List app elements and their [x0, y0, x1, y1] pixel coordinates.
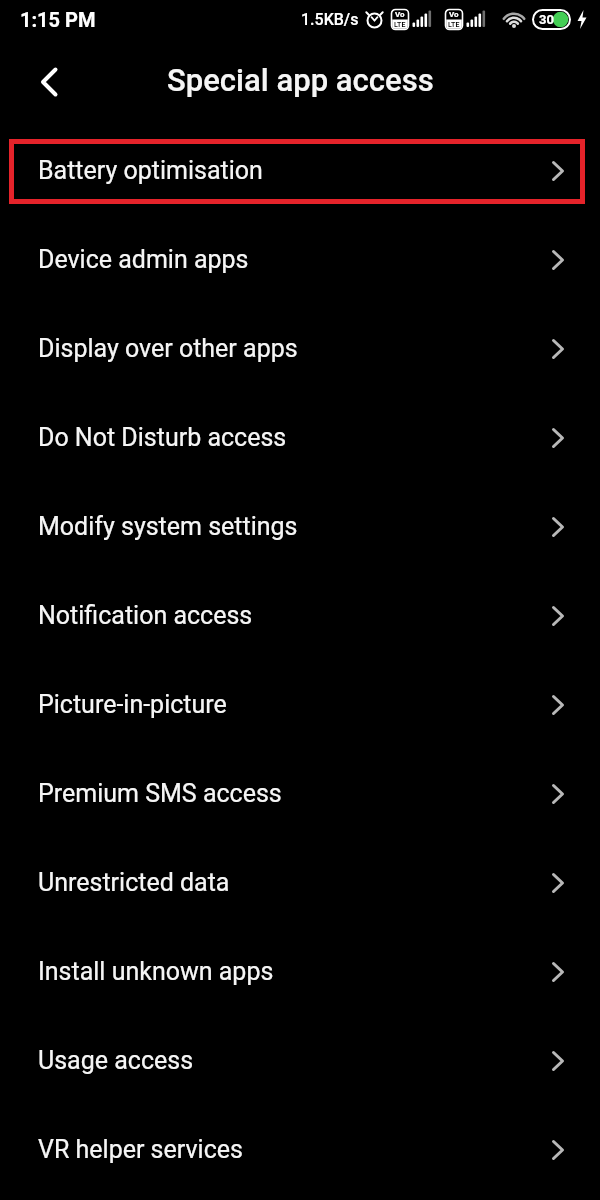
button[interactable]: Usage access — [0, 1016, 600, 1105]
staticText: Do Not Disturb access — [38, 423, 287, 452]
staticText: Usage access — [38, 1046, 194, 1075]
staticText: VR helper services — [38, 1135, 243, 1164]
staticText: Modify system settings — [38, 512, 298, 541]
staticText: Unrestricted data — [38, 868, 230, 897]
staticText: LTE — [394, 21, 406, 29]
staticText: Picture-in-picture — [38, 690, 227, 719]
button[interactable]: VR helper services — [0, 1105, 600, 1194]
staticText: 1:15 PM — [20, 8, 96, 31]
staticText: Notification access — [38, 601, 253, 630]
button[interactable]: Unrestricted data — [0, 838, 600, 927]
staticText: Vo — [395, 10, 405, 19]
staticText: 30 — [539, 12, 554, 27]
button[interactable]: Device admin apps — [0, 215, 600, 304]
staticText: 1.5KB/s — [301, 10, 359, 29]
button[interactable]: Picture-in-picture — [0, 660, 600, 749]
button[interactable]: Modify system settings — [0, 482, 600, 571]
staticText: Battery optimisation — [38, 156, 263, 185]
staticText: LTE — [448, 21, 460, 29]
button[interactable]: Premium SMS access — [0, 749, 600, 838]
staticText: Special app access — [167, 62, 434, 98]
button[interactable]: Do Not Disturb access — [0, 393, 600, 482]
staticText: Device admin apps — [38, 245, 249, 274]
button[interactable]: Notification access — [0, 571, 600, 660]
staticText: Vo — [449, 10, 459, 19]
button[interactable] — [21, 54, 77, 110]
staticText: Premium SMS access — [38, 779, 282, 808]
button[interactable]: Battery optimisation — [0, 126, 600, 215]
button[interactable]: Display over other apps — [0, 304, 600, 393]
staticText: Display over other apps — [38, 334, 298, 363]
button[interactable]: Install unknown apps — [0, 927, 600, 1016]
staticText: Install unknown apps — [38, 957, 274, 986]
